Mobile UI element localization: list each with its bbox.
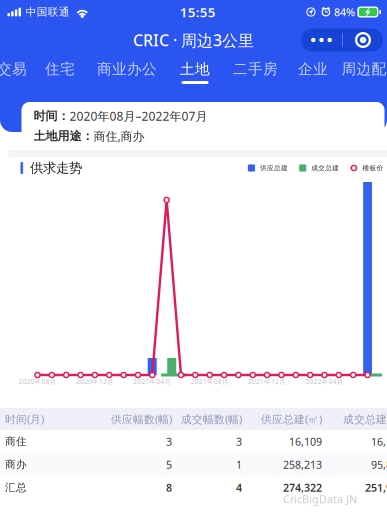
staticText: CRIC · 周边3公里 [133,29,254,51]
staticText: 2020年12月 [76,377,114,386]
staticText: 4 [236,480,242,495]
staticText: 供应幅数(幅) [111,412,172,426]
staticText: 时间(月) [5,412,44,426]
staticText: 成交总建 [311,164,339,172]
staticText: 2021年12月 [248,377,286,386]
staticText: 商办 [5,458,27,471]
button[interactable]: 住宅 [32,56,88,90]
staticText: 商住 [5,435,27,448]
staticText: 交易 [0,60,27,78]
button[interactable]: 交易 [0,56,32,90]
staticText: 成交总建(㎡) [343,412,387,426]
button[interactable]: 商业办公 [88,56,166,90]
staticText: 企业 [298,60,328,78]
staticText: 2021年08月 [191,377,229,386]
staticText: 土地用途： [33,129,93,143]
staticText: 供求走势 [30,160,82,176]
button[interactable]: 企业 [287,56,339,90]
staticText: 2020年08月 [18,377,56,386]
staticText: 住宅 [45,60,75,78]
staticText: 供应总建 [260,164,288,172]
staticText: 1 [236,457,242,472]
staticText: 商业办公 [97,60,157,78]
button[interactable]: Close mini program [343,28,383,51]
staticText: 16,109 [289,434,322,449]
staticText: 274,322 [283,480,322,495]
staticText: 中国联通 [26,5,70,18]
button[interactable]: More [301,28,342,51]
button[interactable]: 土地 [166,56,224,90]
staticText: 2021年04月 [133,377,171,386]
staticText: 成交幅数(幅) [181,412,242,426]
staticText: 95,817 [371,457,387,472]
staticText: 2020年08月–2022年07月 [69,108,207,124]
staticText: 3 [166,434,172,449]
staticText: 3 [236,434,242,449]
staticText: 258,213 [283,457,322,472]
staticText: 二手房 [233,60,278,78]
staticText: 商住,商办 [93,128,144,144]
staticText: 时间： [33,109,69,123]
staticText: 周边配 [341,60,386,78]
staticText: 8 [166,480,172,495]
staticText: 土地 [180,60,210,78]
staticText: 15:55 [180,3,216,21]
staticText: 251,926 [365,480,387,495]
staticText: 供应总建(㎡) [261,412,322,426]
staticText: 16,109 [371,434,387,449]
button[interactable]: 周边配 [339,56,387,90]
staticText: 84% [334,5,355,19]
staticText: 楼板价 [362,164,383,172]
staticText: 5 [166,457,172,472]
staticText: CricBigData JN [283,492,357,506]
button[interactable]: 二手房 [224,56,287,90]
staticText: 2022年04月 [305,377,343,386]
staticText: 汇总 [5,481,27,494]
